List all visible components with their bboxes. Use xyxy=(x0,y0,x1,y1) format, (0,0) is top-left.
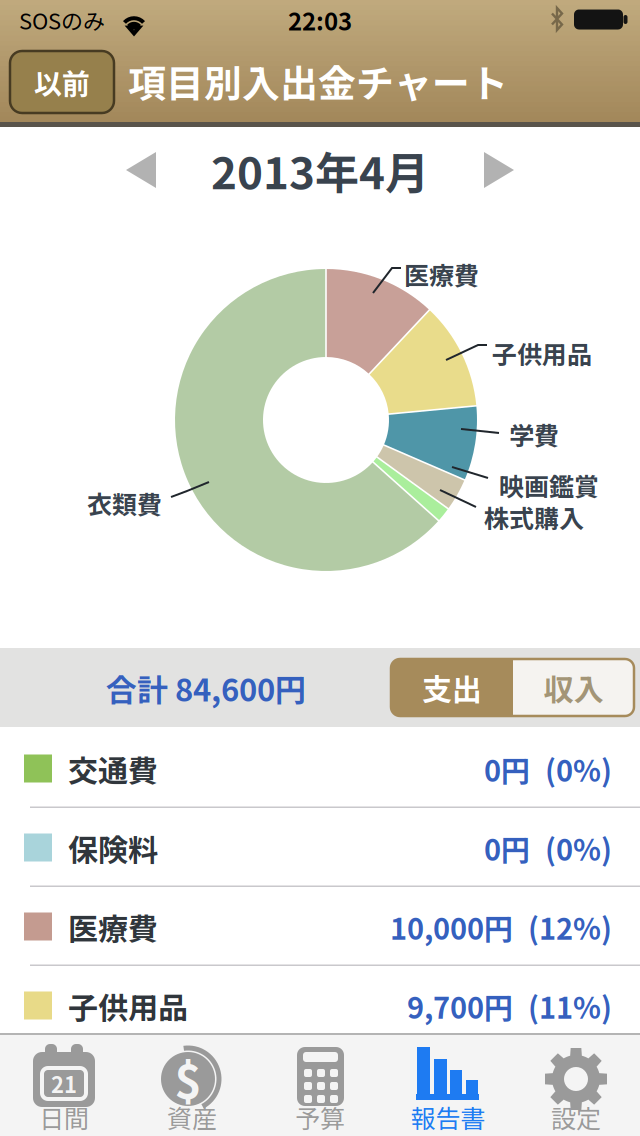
staticText: $ xyxy=(174,1046,201,1112)
button[interactable]: 支出 xyxy=(391,659,513,716)
button[interactable]: 予算 xyxy=(256,1035,384,1135)
staticText: 保険料 xyxy=(68,826,158,870)
button[interactable]: $ xyxy=(128,1035,256,1135)
staticText: 9,700円 (11%) xyxy=(407,985,612,1027)
button[interactable]: 翌月 xyxy=(484,152,514,188)
staticText: 映画鑑賞 xyxy=(499,467,599,503)
staticText: 合計 84,600円 xyxy=(106,666,306,710)
staticText: 0円 (0%) xyxy=(484,748,612,790)
staticText: 設定 xyxy=(551,1099,601,1135)
button[interactable]: 報告書 xyxy=(384,1035,512,1135)
staticText: 交通費 xyxy=(68,747,158,791)
staticText: 医療費 xyxy=(404,256,479,292)
staticText: 報告書 xyxy=(410,1099,485,1135)
staticText: 22:03 xyxy=(288,3,352,37)
staticText: 項目別入出金チャート xyxy=(128,53,508,108)
button[interactable]: 以前 xyxy=(10,51,114,113)
staticText: 以前 xyxy=(34,62,90,102)
staticText: 衣類費 xyxy=(87,485,162,521)
staticText: 医療費 xyxy=(68,905,158,949)
button[interactable]: 設定 xyxy=(512,1035,640,1135)
staticText: 10,000円 (12%) xyxy=(390,906,612,948)
staticText: SOSのみ xyxy=(19,4,105,36)
staticText: 子供用品 xyxy=(68,984,188,1028)
staticText: 資産 xyxy=(167,1099,217,1135)
staticText: 子供用品 xyxy=(492,335,592,371)
staticText: 学費 xyxy=(509,416,559,452)
staticText: 日間 xyxy=(39,1099,89,1135)
button[interactable]: 収入 xyxy=(513,659,634,716)
staticText: 2013年4月 xyxy=(211,138,429,202)
staticText: 0円 (0%) xyxy=(484,827,612,869)
staticText: 21 xyxy=(51,1068,77,1099)
staticText: 株式購入 xyxy=(484,499,584,535)
staticText: 予算 xyxy=(295,1099,345,1135)
staticText: 収入 xyxy=(543,666,603,709)
button[interactable]: 21 xyxy=(0,1035,128,1135)
staticText: 支出 xyxy=(422,666,482,709)
button[interactable]: 前月 xyxy=(126,152,156,188)
